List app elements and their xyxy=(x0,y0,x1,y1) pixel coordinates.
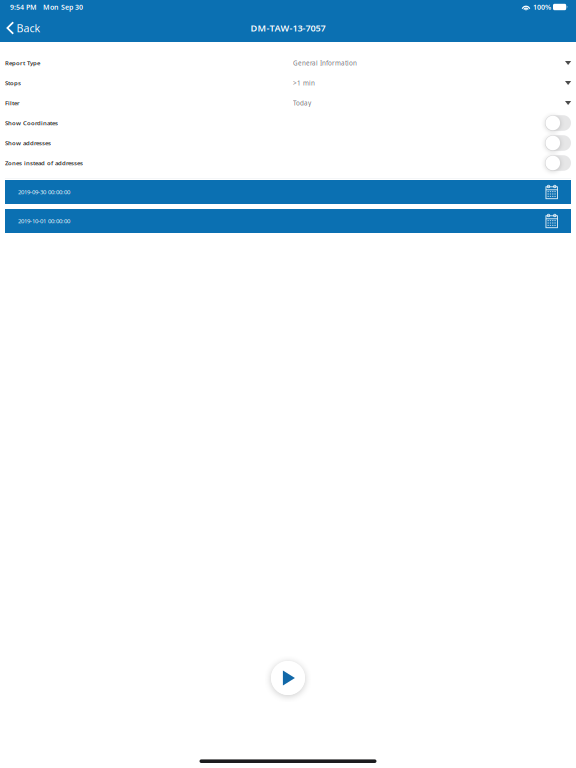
staticText: Back xyxy=(16,21,40,35)
staticText: Stops xyxy=(5,79,21,87)
button[interactable]: Play xyxy=(264,654,312,702)
staticText: Show Coordinates xyxy=(5,119,58,127)
staticText: Filter xyxy=(5,99,20,107)
button[interactable]: Show addresses xyxy=(545,135,571,151)
staticText: Mon Sep 30 xyxy=(43,2,83,12)
staticText: Report Type xyxy=(5,59,40,67)
staticText: General Information xyxy=(293,59,357,67)
button[interactable]: Zones instead of addresses xyxy=(545,155,571,171)
staticText: 100% xyxy=(533,2,551,12)
staticText: Today xyxy=(293,99,311,107)
button[interactable]: Report Type xyxy=(0,53,576,73)
staticText: 9:54 PM xyxy=(10,2,37,12)
button[interactable]: Filter xyxy=(0,93,576,113)
button[interactable]: Back xyxy=(0,15,48,41)
staticText: Zones instead of addresses xyxy=(5,159,83,167)
button[interactable]: 2019-09-30 00:00:00 xyxy=(5,180,571,204)
button[interactable]: 2019-10-01 00:00:00 xyxy=(5,209,571,233)
staticText: 2019-10-01 00:00:00 xyxy=(18,217,70,225)
staticText: 2019-09-30 00:00:00 xyxy=(18,188,70,196)
button[interactable]: Show Coordinates xyxy=(545,115,571,131)
staticText: Show addresses xyxy=(5,139,51,147)
staticText: DM-TAW-13-7057 xyxy=(250,22,325,34)
button[interactable]: Stops xyxy=(0,73,576,93)
staticText: >1 min xyxy=(293,79,315,87)
